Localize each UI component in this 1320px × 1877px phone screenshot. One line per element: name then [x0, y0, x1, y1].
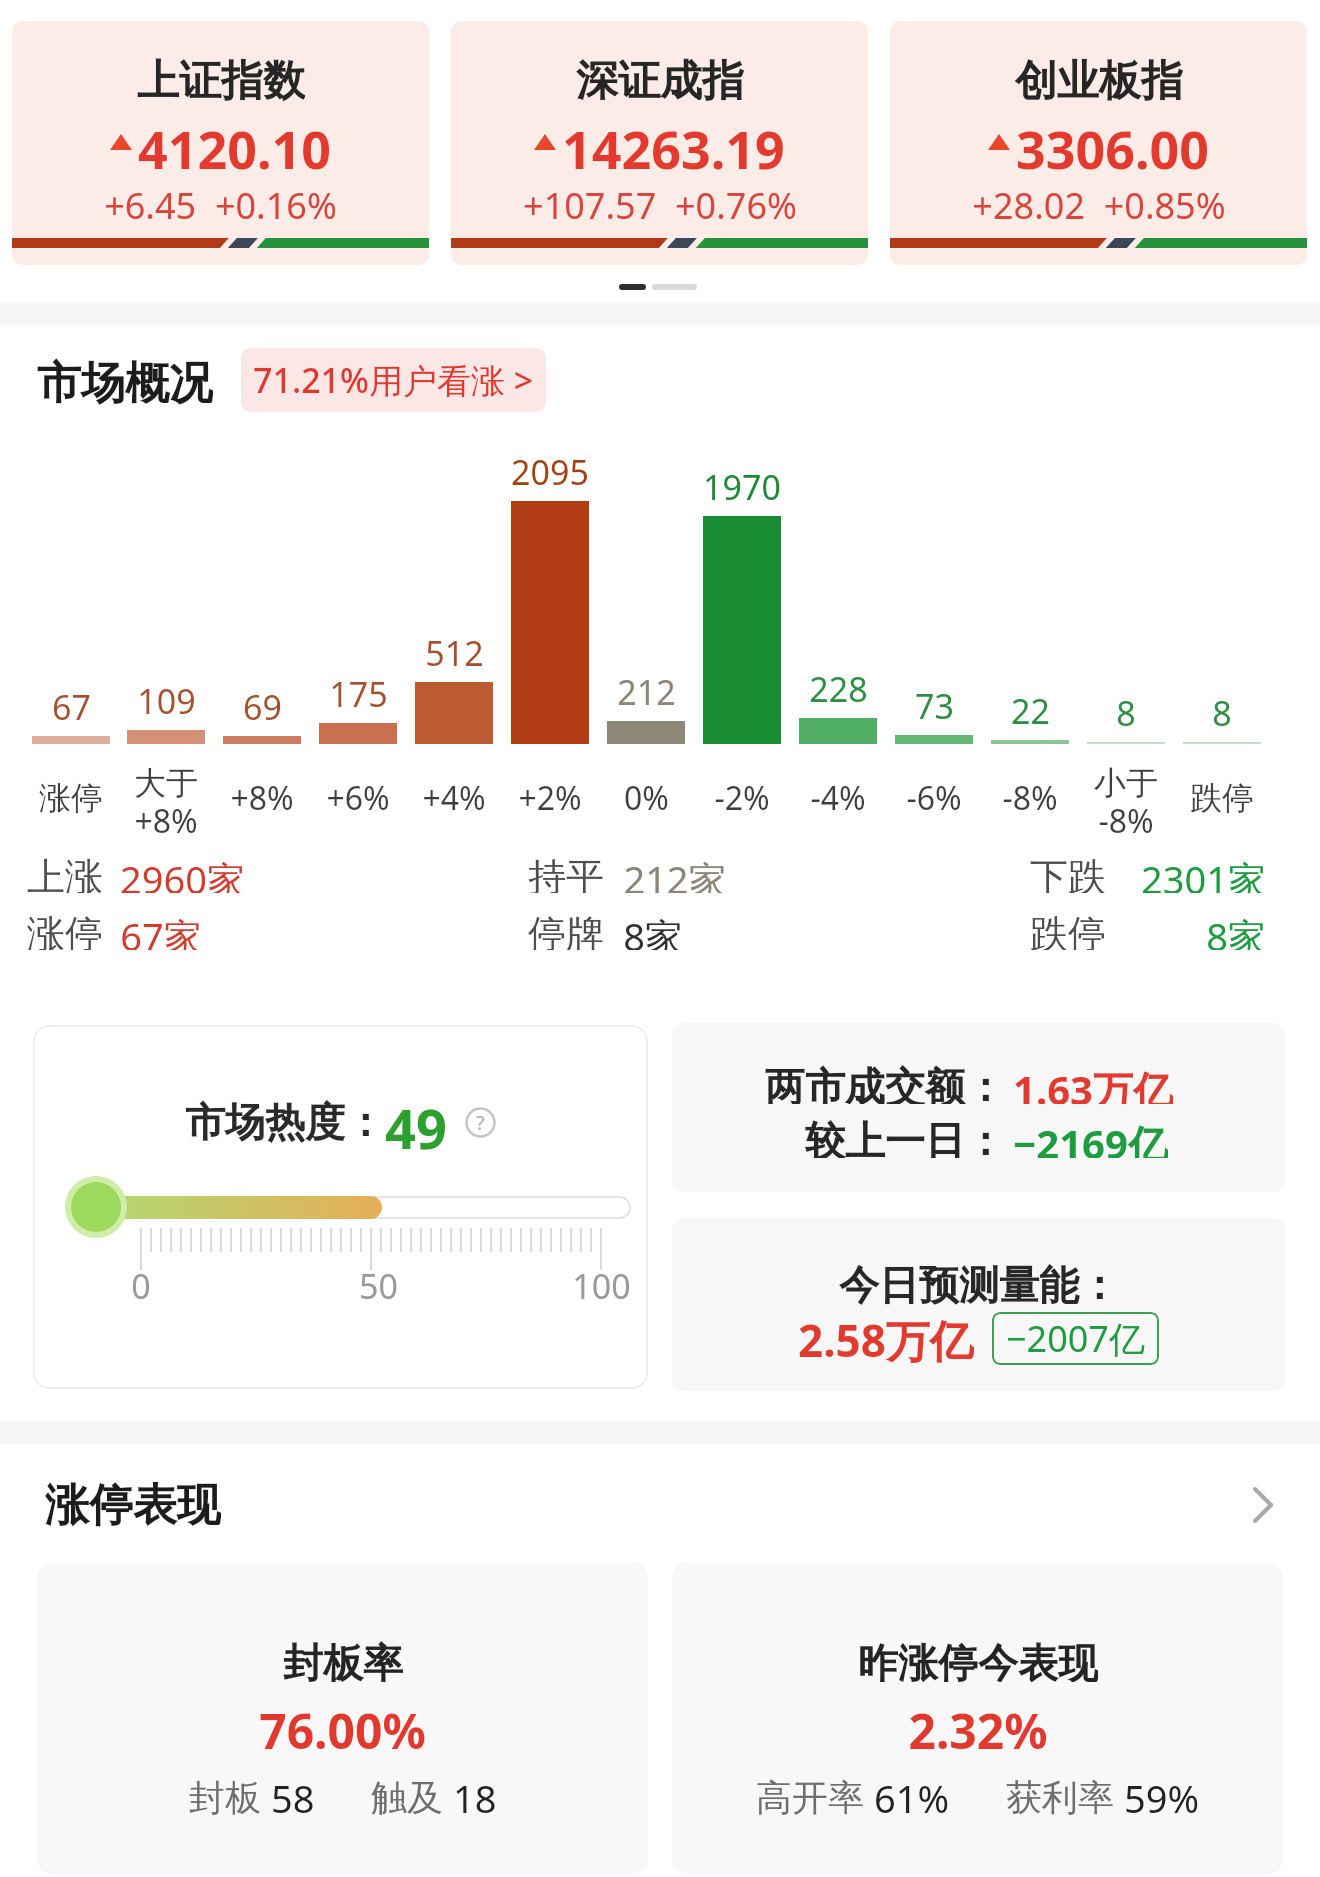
- staticText: 涨停表现: [45, 1478, 221, 1528]
- staticText: 较上一日：: [805, 1116, 1005, 1158]
- staticText: 100: [572, 1263, 631, 1309]
- staticText: 跌停: [1030, 910, 1106, 950]
- staticText: 两市成交额：: [765, 1062, 1005, 1104]
- staticText: 1.63万亿: [1013, 1062, 1173, 1104]
- staticText: +4%: [422, 776, 486, 820]
- staticText: 下跌: [1030, 853, 1106, 893]
- staticText: ?: [476, 1109, 485, 1136]
- staticText: 61%: [874, 1772, 950, 1816]
- staticText: 2.32%: [908, 1698, 1048, 1750]
- staticText: -6%: [906, 776, 962, 820]
- staticText: 市场热度：: [185, 1097, 385, 1147]
- staticText: +2%: [518, 776, 582, 820]
- staticText: -2%: [714, 776, 770, 820]
- staticText: 0%: [624, 776, 669, 820]
- button[interactable]: 71.21%用户看涨 >: [241, 348, 546, 412]
- staticText: 2960家: [120, 853, 245, 893]
- staticText: 1970: [703, 464, 781, 508]
- staticText: 67: [52, 684, 91, 728]
- staticText: 4120.10: [138, 113, 332, 171]
- staticText: 59%: [1124, 1772, 1200, 1816]
- staticText: +6%: [326, 776, 390, 820]
- staticText: 67家: [120, 910, 202, 950]
- button[interactable]: 市场热度：: [33, 1025, 648, 1389]
- staticText: 8家: [1206, 910, 1266, 950]
- staticText: 创业板指: [1015, 55, 1183, 105]
- button[interactable]: 创业板指: [890, 21, 1307, 265]
- staticText: 停牌: [528, 910, 604, 950]
- staticText: −2007亿: [1006, 1314, 1145, 1363]
- staticText: 封板率: [283, 1638, 403, 1682]
- staticText: 封板: [189, 1772, 271, 1816]
- staticText: 212家: [623, 853, 727, 893]
- staticText: 228: [809, 666, 868, 710]
- staticText: 8: [1212, 690, 1232, 734]
- staticText: 上证指数: [137, 55, 305, 105]
- staticText: -8%: [1002, 776, 1058, 820]
- button[interactable]: [672, 1218, 1285, 1391]
- staticText: 2095: [511, 449, 589, 493]
- staticText: 昨涨停今表现: [858, 1638, 1098, 1682]
- button[interactable]: [672, 1023, 1285, 1192]
- button[interactable]: [1252, 1488, 1274, 1522]
- staticText: 8: [1116, 690, 1136, 734]
- staticText: −2169亿: [1013, 1116, 1168, 1158]
- staticText: 49: [385, 1091, 447, 1153]
- staticText: +107.57 +0.76%: [523, 181, 797, 223]
- button[interactable]: [672, 1562, 1283, 1875]
- button[interactable]: 上证指数: [12, 21, 429, 265]
- staticText: 22: [1011, 688, 1050, 732]
- staticText: 58: [271, 1772, 315, 1816]
- staticText: +8%: [230, 776, 294, 820]
- staticText: 109: [137, 678, 196, 722]
- staticText: 175: [329, 671, 388, 715]
- staticText: 76.00%: [259, 1698, 426, 1750]
- staticText: 获利率: [1006, 1772, 1124, 1816]
- staticText: 2301家: [1141, 853, 1266, 893]
- staticText: 触及: [371, 1772, 453, 1816]
- button[interactable]: [37, 1562, 648, 1875]
- staticText: 高开率: [756, 1772, 874, 1816]
- staticText: 50: [359, 1263, 398, 1309]
- staticText: +6.45 +0.16%: [104, 181, 337, 223]
- staticText: 大于 +8%: [134, 763, 198, 833]
- staticText: 3306.00: [1016, 113, 1210, 171]
- staticText: 71.21%用户看涨 >: [253, 357, 534, 403]
- staticText: 深证成指: [576, 55, 744, 105]
- staticText: 小于 -8%: [1094, 763, 1158, 833]
- staticText: 14263.19: [562, 113, 785, 171]
- staticText: 持平: [528, 853, 604, 893]
- staticText: 今日预测量能：: [839, 1260, 1119, 1306]
- staticText: 8家: [623, 910, 683, 950]
- button[interactable]: 深证成指: [451, 21, 868, 265]
- staticText: 0: [131, 1263, 151, 1309]
- staticText: 18: [453, 1772, 497, 1816]
- staticText: 上涨: [27, 853, 103, 893]
- staticText: +28.02 +0.85%: [972, 181, 1226, 223]
- staticText: 69: [243, 684, 282, 728]
- staticText: 2.58万亿: [798, 1310, 974, 1366]
- staticText: 212: [617, 669, 676, 713]
- staticText: 涨停: [39, 778, 103, 818]
- staticText: 涨停: [27, 910, 103, 950]
- staticText: 市场概况: [37, 356, 213, 406]
- staticText: 512: [425, 630, 484, 674]
- staticText: -4%: [810, 776, 866, 820]
- staticText: 跌停: [1190, 778, 1254, 818]
- staticText: 73: [915, 683, 954, 727]
